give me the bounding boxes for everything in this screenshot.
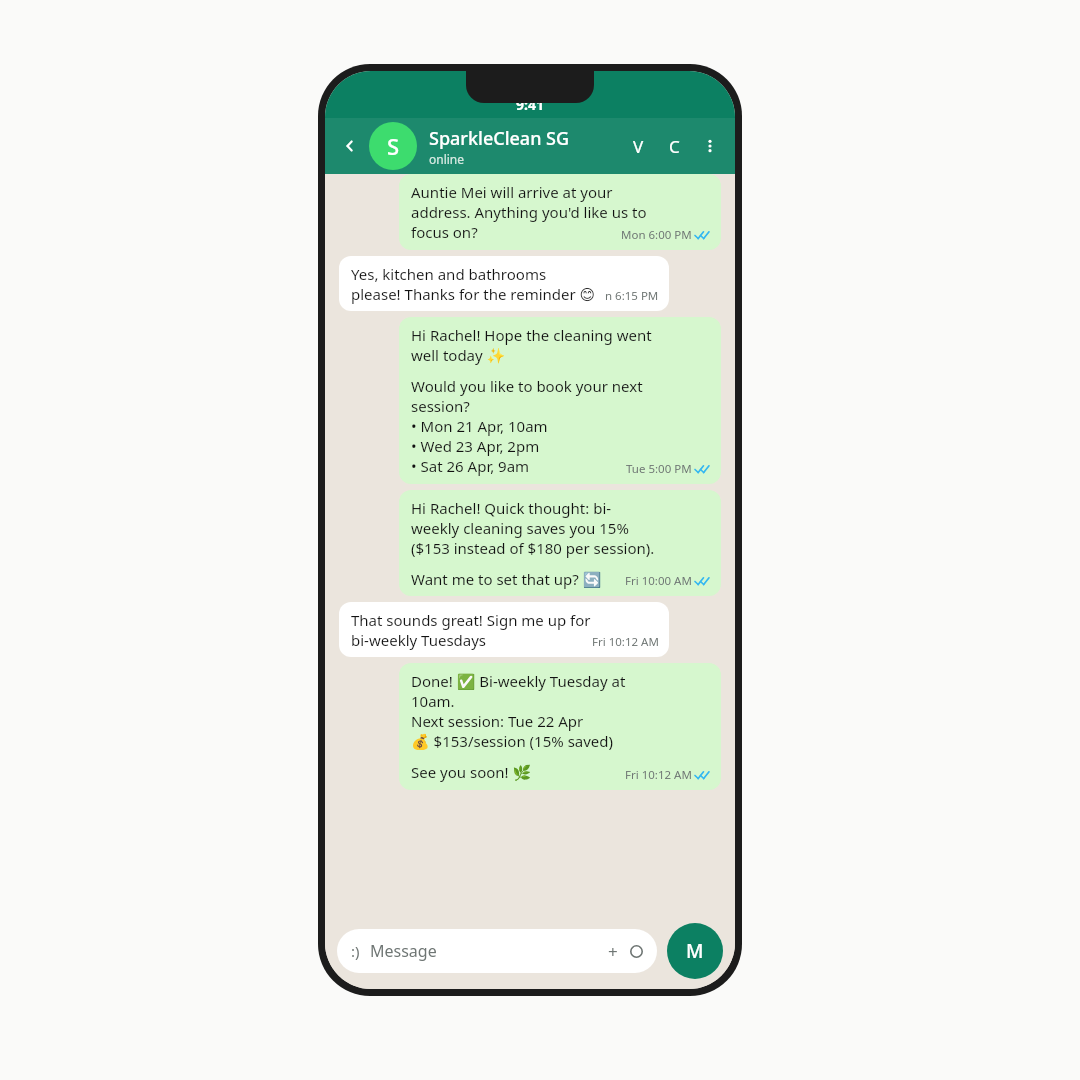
staticText: Auntie Mei will arrive at your: [411, 182, 613, 202]
staticText: C: [669, 135, 680, 158]
button[interactable]: Yes, kitchen and bathrooms: [339, 256, 669, 311]
staticText: bi-weekly Tuesdays: [351, 630, 487, 650]
staticText: 💰 $153/session (15% saved): [411, 731, 614, 751]
staticText: Fri 10:00 AM: [625, 573, 692, 589]
staticText: please! Thanks for the reminder 😊: [351, 284, 596, 304]
button[interactable]: Hi Rachel! Quick thought: bi-: [399, 490, 721, 596]
staticText: address. Anything you'd like us to: [411, 202, 647, 222]
button[interactable]: That sounds great! Sign me up for: [339, 602, 669, 657]
staticText: That sounds great! Sign me up for: [351, 610, 591, 630]
staticText: • Mon 21 Apr, 10am: [411, 416, 548, 436]
button[interactable]: Call: [659, 131, 689, 161]
button[interactable]: Hi Rachel! Hope the cleaning went: [399, 317, 721, 484]
button[interactable]: Back: [337, 133, 363, 159]
staticText: focus on?: [411, 222, 478, 242]
staticText: • Sat 26 Apr, 9am: [411, 456, 530, 476]
staticText: Fri 10:12 AM: [592, 634, 659, 650]
staticText: Mon 6:00 PM: [621, 227, 692, 243]
staticText: Would you like to book your next: [411, 376, 643, 396]
staticText: ($153 instead of $180 per session).: [411, 538, 655, 558]
button[interactable]: Auntie Mei will arrive at your: [399, 174, 721, 250]
staticText: Hi Rachel! Quick thought: bi-: [411, 498, 612, 518]
button[interactable]: More options: [695, 131, 725, 161]
staticText: Want me to set that up? 🔄: [411, 569, 602, 589]
staticText: M: [686, 938, 704, 964]
staticText: Yes, kitchen and bathrooms: [351, 264, 547, 284]
staticText: Next session: Tue 22 Apr: [411, 711, 584, 731]
staticText: V: [633, 135, 644, 158]
staticText: +: [608, 940, 618, 963]
staticText: Message: [370, 940, 608, 962]
staticText: Done! ✅ Bi-weekly Tuesday at: [411, 671, 626, 691]
staticText: Tue 5:00 PM: [626, 461, 692, 477]
staticText: well today ✨: [411, 345, 506, 365]
staticText: n 6:15 PM: [605, 288, 659, 304]
staticText: session?: [411, 396, 470, 416]
button[interactable]: Video call: [623, 131, 653, 161]
button[interactable]: Send: [667, 923, 723, 979]
staticText: See you soon! 🌿: [411, 762, 532, 782]
button[interactable]: Done! ✅ Bi-weekly Tuesday at: [399, 663, 721, 790]
staticText: • Wed 23 Apr, 2pm: [411, 436, 540, 456]
staticText: :): [351, 941, 360, 961]
staticText: 10am.: [411, 691, 455, 711]
staticText: Hi Rachel! Hope the cleaning went: [411, 325, 652, 345]
button[interactable]: S: [369, 122, 417, 170]
staticText: SparkleClean SG: [429, 126, 570, 151]
staticText: 9:41: [516, 95, 544, 114]
button[interactable]: :): [337, 929, 657, 973]
staticText: weekly cleaning saves you 15%: [411, 518, 629, 538]
staticText: S: [387, 131, 400, 161]
staticText: online: [429, 151, 465, 167]
staticText: Fri 10:12 AM: [625, 767, 692, 783]
